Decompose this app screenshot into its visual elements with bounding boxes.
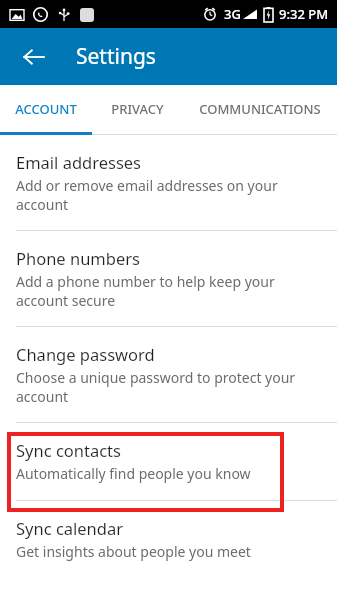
staticText: ACCOUNT xyxy=(15,100,77,118)
button[interactable]: ACCOUNT xyxy=(0,85,92,132)
staticText: Email addresses xyxy=(16,151,142,173)
staticText: 9:32 PM xyxy=(279,5,329,23)
button[interactable]: Change password xyxy=(0,327,337,422)
staticText: Choose a unique password to protect your… xyxy=(16,368,319,406)
button[interactable]: Email addresses xyxy=(0,135,337,230)
button[interactable]: Sync contacts xyxy=(0,423,337,500)
staticText: Add a phone number to help keep your acc… xyxy=(16,272,319,310)
staticText: Sync calendar xyxy=(16,517,124,539)
button[interactable]: PRIVACY xyxy=(92,85,183,132)
button[interactable]: Phone numbers xyxy=(0,231,337,326)
button[interactable]: Back xyxy=(12,35,56,79)
staticText: Settings xyxy=(76,42,156,71)
staticText: Automatically find people you know xyxy=(16,464,251,483)
staticText: 3G xyxy=(224,5,241,23)
staticText: Get insights about people you meet xyxy=(16,542,251,561)
staticText: PRIVACY xyxy=(111,100,164,118)
staticText: Sync contacts xyxy=(16,439,121,461)
button[interactable]: Sync calendar xyxy=(0,501,337,578)
staticText: Add or remove email addresses on your ac… xyxy=(16,176,319,214)
button[interactable]: COMMUNICATIONS xyxy=(183,85,337,132)
staticText: Change password xyxy=(16,343,155,365)
staticText: COMMUNICATIONS xyxy=(199,100,321,118)
staticText: Phone numbers xyxy=(16,247,140,269)
